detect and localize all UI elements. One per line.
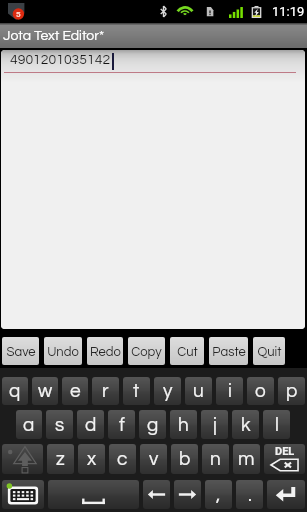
- staticText: Save: [6, 345, 36, 358]
- button[interactable]: .: [236, 480, 263, 509]
- button[interactable]: l: [263, 410, 290, 439]
- button[interactable]: s: [46, 410, 73, 439]
- staticText: h: [178, 415, 189, 435]
- button[interactable]: ,: [205, 480, 232, 509]
- staticText: s: [55, 415, 65, 435]
- button[interactable]: n: [202, 444, 229, 474]
- button[interactable]: Switch keyboard: [2, 480, 44, 509]
- button[interactable]: y: [154, 377, 181, 405]
- staticText: Jota Text Editor*: [3, 29, 105, 43]
- staticText: k: [241, 415, 251, 435]
- staticText: n: [210, 449, 221, 469]
- button[interactable]: b: [171, 444, 198, 474]
- button[interactable]: Paste: [209, 337, 248, 365]
- staticText: m: [238, 449, 255, 469]
- button[interactable]: Redo: [87, 337, 123, 365]
- staticText: x: [87, 449, 97, 469]
- staticText: Redo: [90, 345, 121, 358]
- button[interactable]: d: [77, 410, 104, 439]
- staticText: Quit: [257, 345, 282, 358]
- button[interactable]: Copy: [128, 337, 165, 365]
- staticText: q: [9, 381, 21, 401]
- staticText: o: [255, 381, 266, 401]
- staticText: e: [70, 381, 81, 401]
- button[interactable]: z: [47, 444, 74, 474]
- staticText: f: [119, 415, 125, 435]
- button[interactable]: r: [92, 377, 119, 405]
- button[interactable]: g: [139, 410, 166, 439]
- button[interactable]: Right: [174, 480, 201, 509]
- staticText: a: [23, 415, 35, 435]
- staticText: Paste: [212, 345, 246, 358]
- button[interactable]: Jota Text Editor*: [0, 23, 307, 48]
- button[interactable]: Left: [143, 480, 170, 509]
- button[interactable]: Quit: [253, 337, 285, 365]
- button[interactable]: v: [140, 444, 167, 474]
- staticText: Cut: [177, 345, 198, 358]
- button[interactable]: m: [233, 444, 260, 474]
- staticText: y: [163, 381, 173, 401]
- staticText: d: [85, 415, 97, 435]
- button[interactable]: i: [216, 377, 243, 405]
- button[interactable]: p: [278, 377, 305, 405]
- staticText: Copy: [131, 345, 162, 358]
- button[interactable]: j: [201, 410, 228, 439]
- staticText: DEL: [275, 445, 295, 458]
- staticText: b: [179, 449, 191, 469]
- button[interactable]: f: [108, 410, 135, 439]
- button[interactable]: Cut: [170, 337, 204, 365]
- button[interactable]: h: [170, 410, 197, 439]
- button[interactable]: Save: [2, 337, 39, 365]
- staticText: 11:19: [272, 4, 305, 19]
- button[interactable]: t: [123, 377, 150, 405]
- staticText: l: [275, 415, 279, 435]
- staticText: t: [133, 381, 140, 401]
- staticText: g: [147, 415, 159, 435]
- button[interactable]: w: [32, 377, 58, 405]
- button[interactable]: u: [185, 377, 212, 405]
- button[interactable]: o: [247, 377, 274, 405]
- staticText: w: [38, 381, 53, 401]
- button[interactable]: k: [232, 410, 259, 439]
- staticText: Undo: [47, 345, 79, 358]
- button[interactable]: Delete: [264, 444, 305, 474]
- button[interactable]: Undo: [44, 337, 82, 365]
- staticText: ,: [216, 485, 221, 505]
- button[interactable]: Space: [48, 480, 139, 509]
- button[interactable]: 4901201035142: [1, 50, 305, 329]
- button[interactable]: Enter: [267, 480, 305, 509]
- button[interactable]: c: [109, 444, 136, 474]
- staticText: c: [117, 449, 128, 469]
- staticText: z: [56, 449, 65, 469]
- button[interactable]: q: [2, 377, 28, 405]
- staticText: r: [102, 381, 109, 401]
- staticText: p: [286, 381, 298, 401]
- button[interactable]: a: [16, 410, 42, 439]
- staticText: i: [228, 381, 232, 401]
- button[interactable]: e: [62, 377, 88, 405]
- staticText: 4901201035142: [10, 53, 111, 67]
- staticText: u: [193, 381, 204, 401]
- staticText: 5: [16, 10, 21, 19]
- staticText: v: [149, 449, 159, 469]
- button[interactable]: x: [78, 444, 105, 474]
- staticText: .: [248, 485, 252, 505]
- button[interactable]: Shift: [2, 444, 43, 474]
- staticText: j: [213, 415, 217, 435]
